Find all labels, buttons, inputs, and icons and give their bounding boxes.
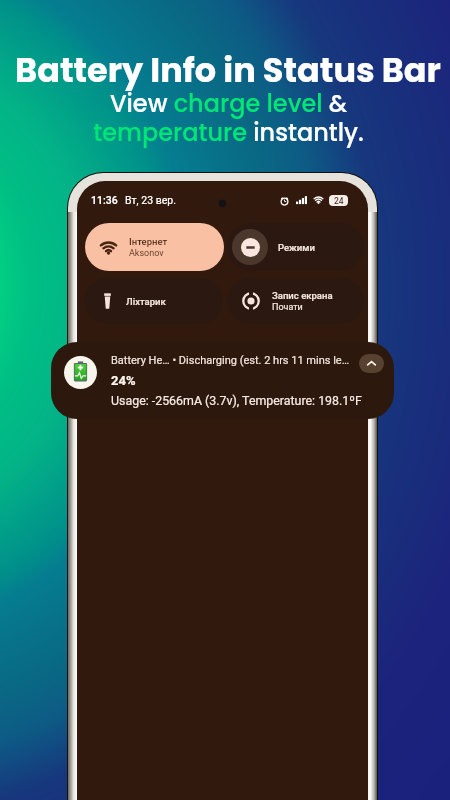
staticText: Battery Info in Status Bar: [15, 47, 441, 94]
staticText: 24: [334, 196, 344, 206]
staticText: 24%: [111, 373, 136, 388]
button[interactable]: Collapse notification: [359, 354, 384, 373]
staticText: Почати: [272, 302, 303, 313]
staticText: Вт, 23 вер.: [125, 194, 176, 206]
staticText: Aksonov: [129, 248, 164, 259]
staticText: View charge level & temperature instantl…: [93, 87, 364, 150]
staticText: 11:36: [91, 194, 118, 206]
staticText: Battery He… • Discharging (est. 2 hrs 11…: [111, 354, 350, 367]
button[interactable]: Режими: [227, 223, 364, 271]
staticText: Usage: -2566mA (3.7v), Temperature: 198.…: [111, 393, 362, 408]
button[interactable]: Ліхтарик: [84, 278, 223, 324]
staticText: Ліхтарик: [126, 296, 166, 307]
staticText: Запис екрана: [272, 290, 333, 301]
staticText: Інтернет: [129, 236, 168, 247]
button[interactable]: Запис екрана: [227, 278, 364, 324]
button[interactable]: Battery He… • Discharging (est. 2 hrs 11…: [51, 342, 394, 419]
staticText: Режими: [278, 242, 315, 253]
button[interactable]: Інтернет: [85, 223, 224, 271]
